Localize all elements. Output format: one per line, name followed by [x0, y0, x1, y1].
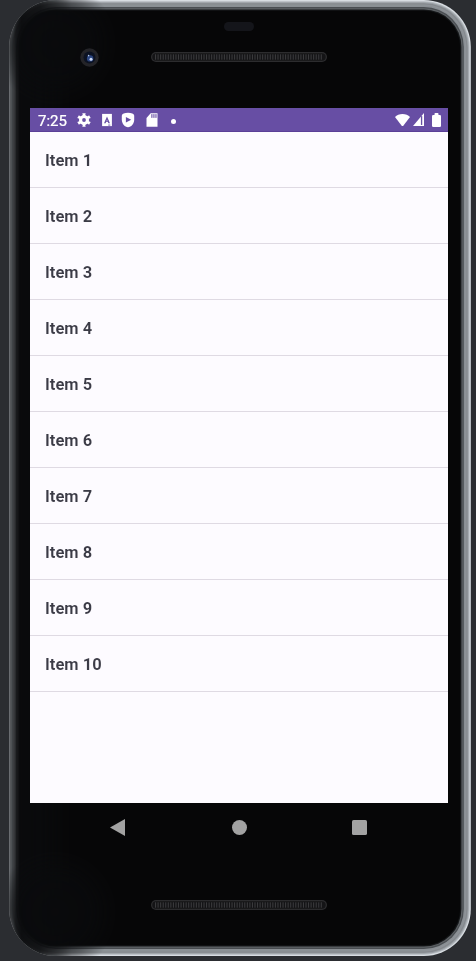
- button[interactable]: Item 8: [30, 524, 448, 580]
- button[interactable]: Home: [232, 820, 247, 835]
- button[interactable]: Item 1: [30, 132, 448, 188]
- button[interactable]: Item 3: [30, 244, 448, 300]
- button[interactable]: Recent apps: [352, 820, 367, 835]
- button[interactable]: Item 7: [30, 468, 448, 524]
- staticText: Item 4: [45, 319, 93, 338]
- staticText: Item 7: [45, 487, 93, 506]
- staticText: 7:25: [38, 112, 67, 130]
- staticText: Item 3: [45, 263, 93, 282]
- button[interactable]: Item 9: [30, 580, 448, 636]
- button[interactable]: Item 10: [30, 636, 448, 692]
- staticText: Item 9: [45, 599, 93, 618]
- staticText: Item 8: [45, 543, 93, 562]
- button[interactable]: Item 6: [30, 412, 448, 468]
- staticText: Item 1: [45, 151, 93, 170]
- staticText: Item 10: [45, 655, 102, 674]
- button[interactable]: Item 4: [30, 300, 448, 356]
- staticText: Item 6: [45, 431, 93, 450]
- button[interactable]: Item 5: [30, 356, 448, 412]
- button[interactable]: Back: [110, 819, 125, 836]
- staticText: Item 2: [45, 207, 93, 226]
- button[interactable]: Item 2: [30, 188, 448, 244]
- staticText: Item 5: [45, 375, 93, 394]
